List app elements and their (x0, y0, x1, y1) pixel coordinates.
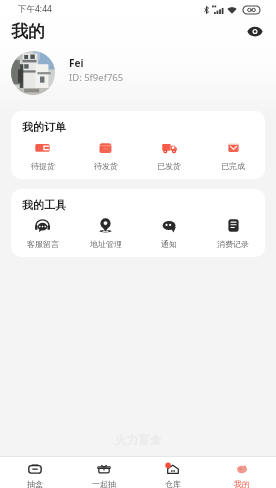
staticText: 已发货 (157, 161, 181, 171)
button[interactable]: 待发货 (74, 140, 137, 171)
staticText: 已完成 (221, 161, 245, 171)
button[interactable]: 消费记录 (201, 218, 265, 249)
staticText: 仓库 (165, 479, 181, 488)
staticText: 待提货 (31, 161, 55, 171)
button[interactable]: 已完成 (201, 140, 265, 171)
button[interactable]: 通知 (137, 218, 201, 249)
staticText: 地址管理 (90, 239, 122, 249)
staticText: 客服留言 (27, 239, 59, 249)
button[interactable]: 我的 (207, 457, 276, 488)
staticText: 待发货 (94, 161, 118, 171)
button[interactable]: 客服留言 (11, 218, 74, 249)
button[interactable]: 仓库 (138, 457, 207, 488)
staticText: 我的订单 (22, 120, 66, 134)
button[interactable]: 待提货 (11, 140, 74, 171)
staticText: 我的 (234, 479, 250, 488)
staticText: 一起抽 (92, 479, 116, 488)
button[interactable]: 一起抽 (69, 457, 138, 488)
staticText: ID: 5f9ef765 (69, 71, 124, 84)
button[interactable]: 抽盒 (0, 457, 69, 488)
staticText: 抽盒 (27, 479, 43, 488)
button[interactable]: Toggle visibility (247, 25, 263, 38)
staticText: 我的 (11, 21, 45, 42)
button[interactable]: 地址管理 (74, 218, 137, 249)
button[interactable]: 已发货 (137, 140, 201, 171)
staticText: 通知 (161, 239, 177, 249)
staticText: Fei (69, 56, 84, 70)
button[interactable]: Fei (0, 51, 276, 95)
staticText: 火力盲盒 (115, 433, 161, 447)
staticText: 我的工具 (22, 198, 66, 212)
staticText: 消费记录 (217, 239, 249, 249)
staticText: 下午4:44 (18, 3, 52, 15)
